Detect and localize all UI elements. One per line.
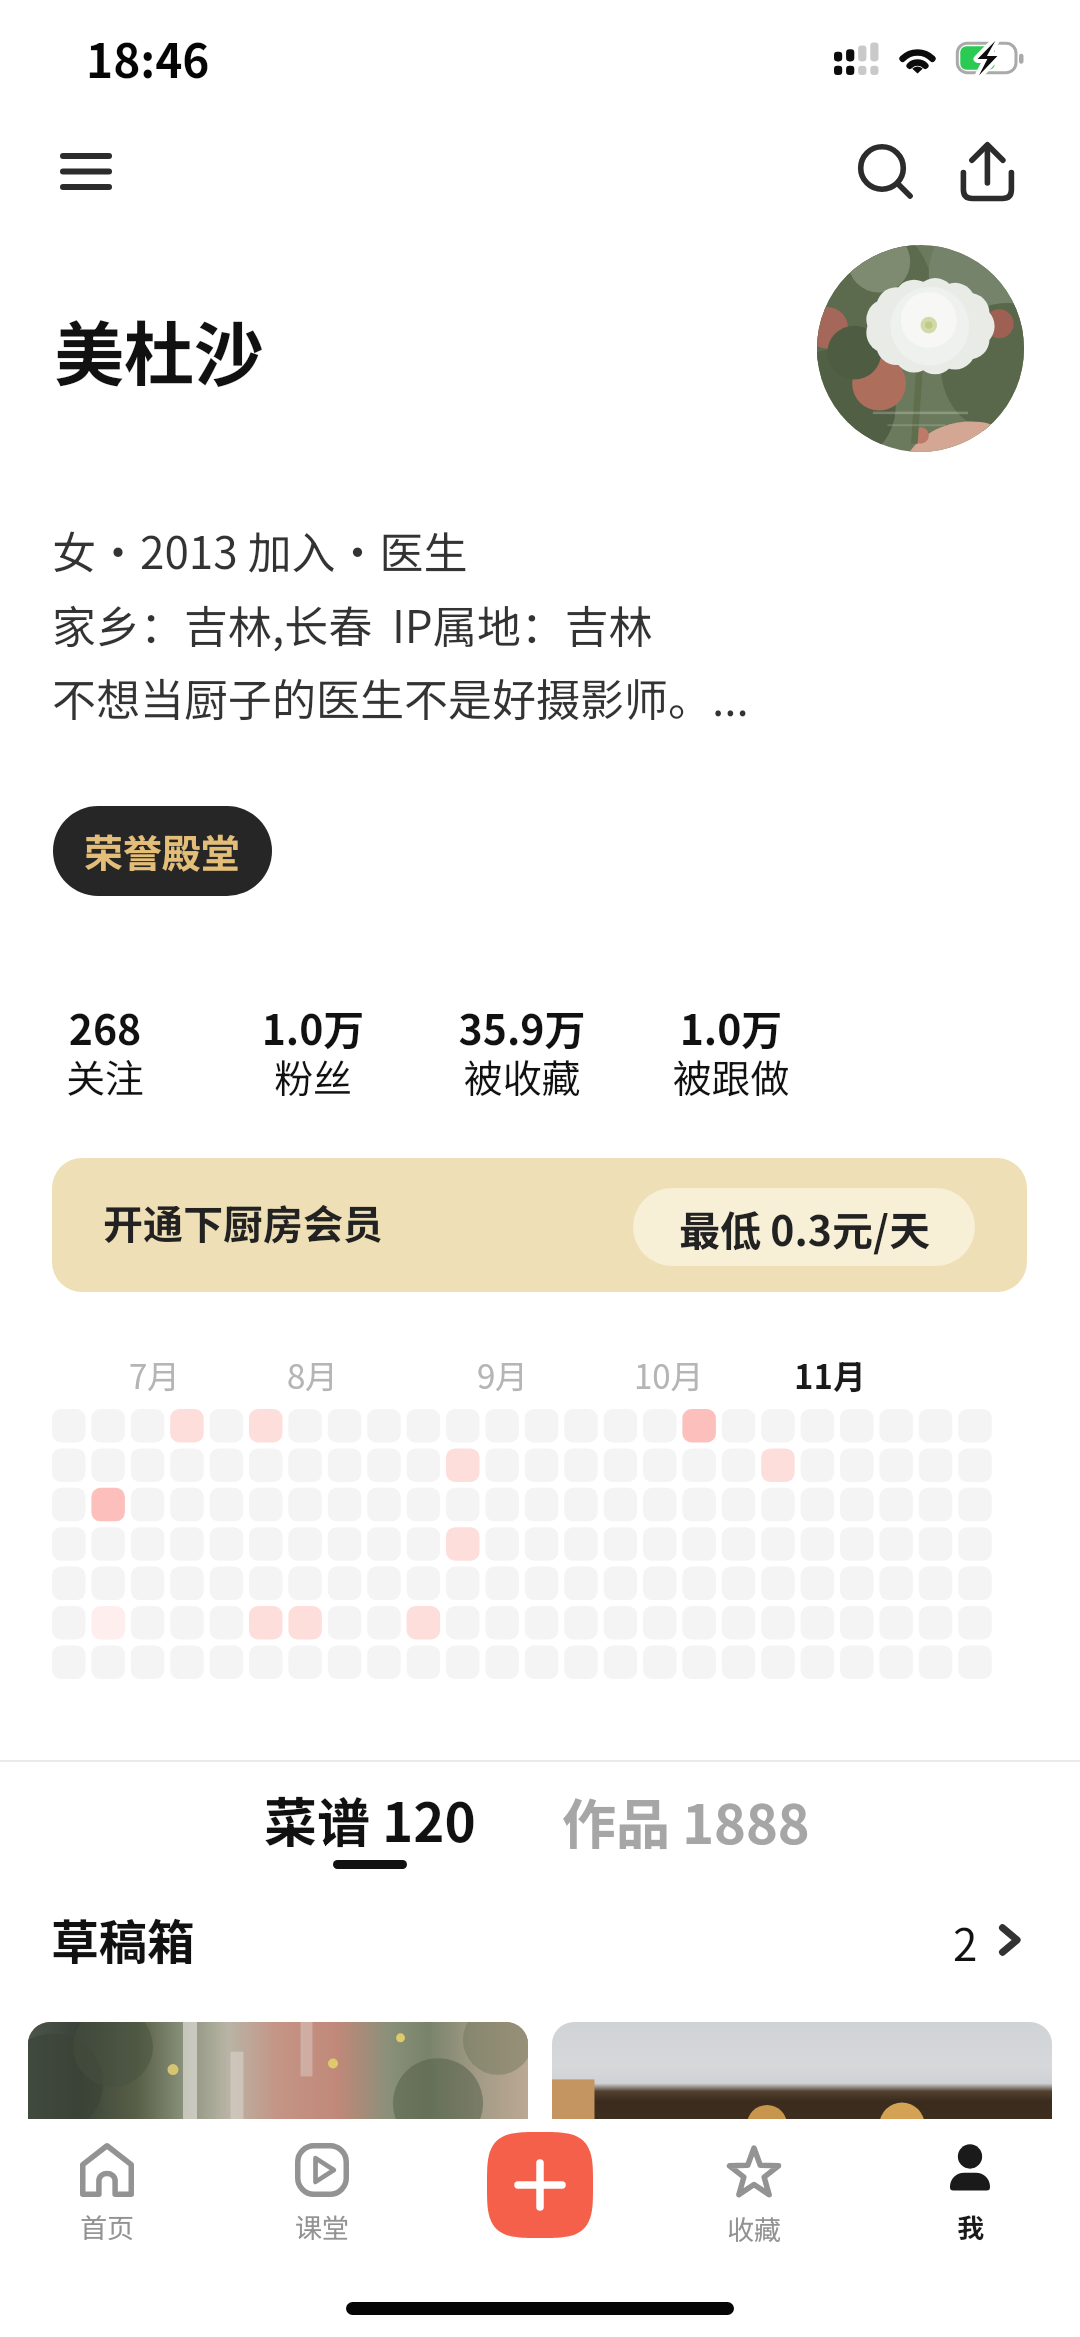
staticText: 不想当厨子的医生不是好摄影师。...: [52, 665, 749, 738]
staticText: 2: [953, 1910, 978, 1974]
staticText: 我: [957, 2207, 984, 2246]
staticText: 11月: [794, 1351, 866, 1399]
button[interactable]: 课堂: [232, 2119, 412, 2269]
staticText: 收藏: [727, 2209, 781, 2248]
staticText: 18:46: [86, 25, 210, 92]
staticText: 1.0万: [626, 997, 836, 1056]
staticText: 作品 1888: [562, 1781, 810, 1859]
staticText: 菜谱 120: [264, 1781, 476, 1858]
staticText: 9月: [477, 1351, 529, 1399]
staticText: 8月: [287, 1351, 339, 1399]
button[interactable]: Create: [487, 2132, 593, 2238]
button[interactable]: Menu: [30, 132, 108, 208]
button[interactable]: [28, 2022, 528, 2121]
button[interactable]: Search: [839, 125, 925, 211]
button[interactable]: 1.0万: [208, 997, 418, 1107]
staticText: 草稿箱: [51, 1904, 196, 1974]
staticText: 美杜沙: [54, 299, 264, 400]
staticText: 开通下厨房会员: [103, 1193, 383, 1251]
staticText: 10月: [634, 1351, 704, 1399]
button[interactable]: 荣誉殿堂: [53, 806, 272, 896]
staticText: 1.0万: [208, 997, 418, 1056]
staticText: 被跟做: [626, 1048, 836, 1104]
button[interactable]: [552, 2022, 1052, 2121]
button[interactable]: Share: [944, 130, 1031, 210]
button[interactable]: 我: [880, 2119, 1060, 2269]
staticText: 女・2013 加入・医生: [52, 518, 468, 592]
button[interactable]: Avatar: [817, 245, 1024, 452]
button[interactable]: 首页: [17, 2119, 197, 2269]
staticText: 7月: [129, 1351, 181, 1399]
button[interactable]: 开通下厨房会员: [52, 1158, 1027, 1292]
staticText: 荣誉殿堂: [84, 823, 241, 879]
staticText: 粉丝: [208, 1048, 418, 1104]
button[interactable]: 1.0万: [626, 997, 836, 1107]
button[interactable]: 35.9万: [417, 997, 627, 1107]
staticText: 被收藏: [417, 1048, 627, 1104]
staticText: 家乡：吉林,长春 IP属地：吉林: [52, 592, 653, 665]
staticText: 课堂: [295, 2207, 349, 2246]
button[interactable]: 菜谱 120: [264, 1781, 476, 1869]
button[interactable]: 268: [0, 997, 210, 1107]
staticText: 268: [0, 997, 210, 1056]
staticText: 最低 0.3元/天: [679, 1198, 930, 1257]
button[interactable]: 作品 1888: [562, 1781, 810, 1859]
staticText: 关注: [0, 1048, 210, 1104]
staticText: 35.9万: [417, 997, 627, 1056]
button[interactable]: 草稿箱: [0, 1898, 1080, 1990]
staticText: 首页: [80, 2207, 134, 2246]
button[interactable]: 收藏: [664, 2119, 844, 2269]
